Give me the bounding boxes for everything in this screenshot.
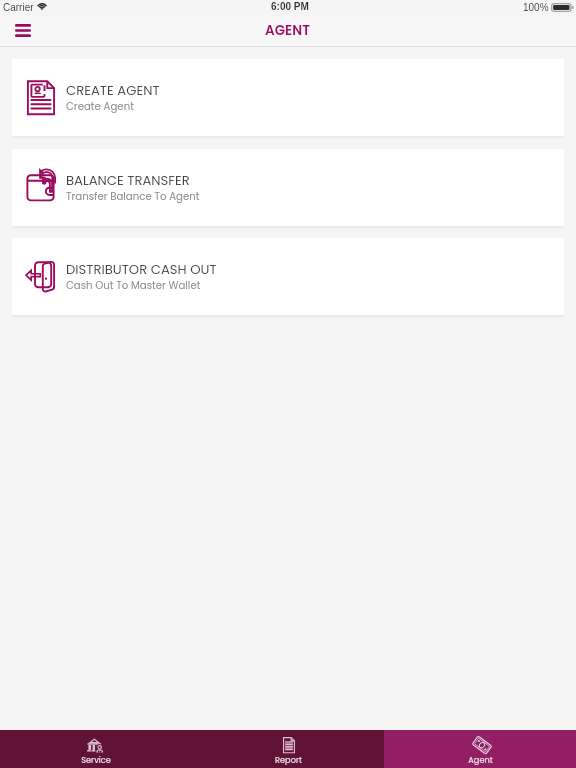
staticText: Cash Out To Master Wallet bbox=[66, 278, 201, 292]
staticText: 100% bbox=[523, 2, 549, 13]
button[interactable]: Service bbox=[0, 730, 192, 768]
button[interactable]: Agent bbox=[384, 730, 576, 768]
staticText: Create Agent bbox=[66, 99, 134, 113]
staticText: DISTRIBUTOR CASH OUT bbox=[66, 260, 217, 278]
button[interactable]: Report bbox=[192, 730, 384, 768]
button[interactable]: BALANCE TRANSFER bbox=[12, 149, 564, 226]
button[interactable]: DISTRIBUTOR CASH OUT bbox=[12, 238, 564, 315]
staticText: 6:00 PM bbox=[271, 1, 309, 12]
staticText: Agent bbox=[468, 754, 493, 765]
staticText: Service bbox=[81, 754, 111, 765]
button[interactable]: CREATE AGENT bbox=[12, 59, 564, 136]
staticText: BALANCE TRANSFER bbox=[66, 171, 190, 189]
button[interactable]: Open navigation menu bbox=[7, 15, 39, 45]
staticText: Carrier bbox=[3, 2, 34, 13]
staticText: Transfer Balance To Agent bbox=[66, 189, 200, 203]
staticText: AGENT bbox=[265, 21, 311, 40]
staticText: Report bbox=[275, 754, 302, 765]
staticText: CREATE AGENT bbox=[66, 81, 160, 99]
